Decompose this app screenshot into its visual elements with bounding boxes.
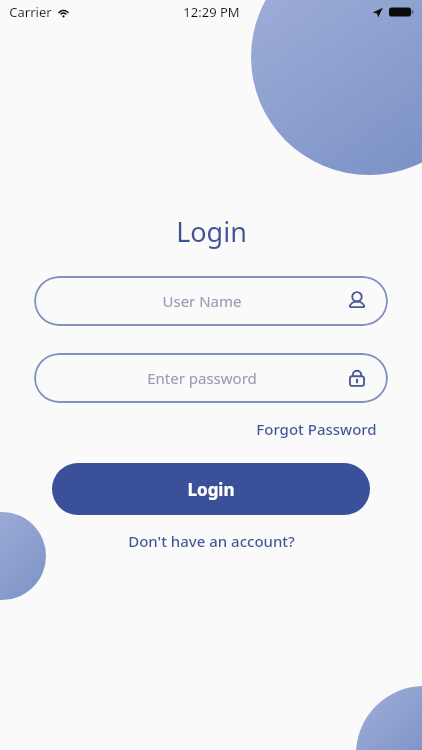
staticText: Login [187, 478, 235, 501]
staticText: User Name [58, 291, 346, 311]
button[interactable]: Don't have an account? [122, 526, 301, 556]
staticText: Don't have an account? [128, 531, 295, 551]
button[interactable]: Enter password [34, 353, 388, 403]
other: Password [346, 367, 368, 389]
button[interactable]: User Name [34, 276, 388, 326]
staticText: Enter password [58, 368, 346, 388]
staticText: Carrier [9, 3, 52, 21]
button[interactable]: Login [52, 463, 370, 515]
other: User name [346, 290, 368, 312]
staticText: Forgot Password [256, 419, 377, 439]
staticText: Login [176, 213, 247, 250]
button[interactable]: Forgot Password [254, 415, 379, 443]
staticText: 12:29 PM [183, 3, 240, 21]
